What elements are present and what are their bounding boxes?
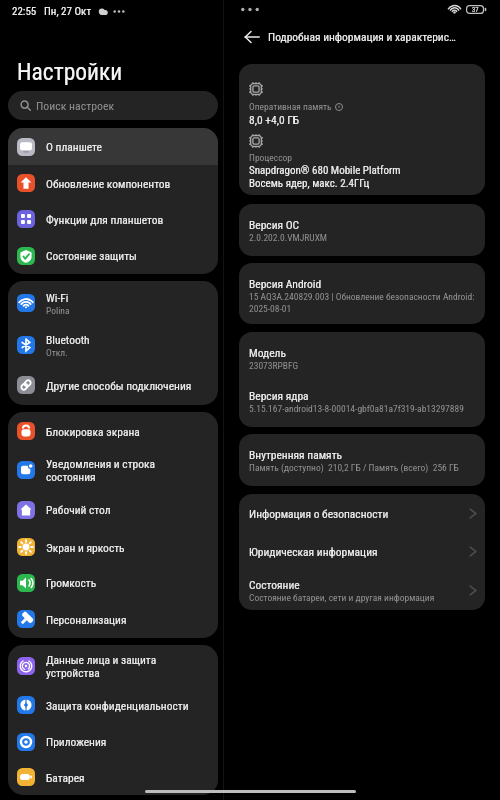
button[interactable]: Версия ядра	[239, 389, 485, 414]
staticText: Блокировка экрана	[46, 425, 140, 438]
button[interactable]: Юридическая информация	[239, 532, 485, 570]
button[interactable]: Состояние	[239, 570, 485, 610]
staticText: 15 AQ3A.240829.003 | Обновление безопасн…	[249, 291, 475, 314]
staticText: Восемь ядер, макс. 2.4ГГц	[249, 177, 370, 190]
button[interactable]: Персонализация	[8, 600, 218, 638]
staticText: Другие способы подключения	[46, 379, 192, 392]
staticText: Персонализация	[46, 613, 127, 626]
button[interactable]: Версия ОС	[239, 218, 485, 243]
button[interactable]: Поиск настроек	[8, 91, 218, 120]
staticText: 22:55	[12, 5, 37, 18]
button[interactable]: Назад	[238, 23, 266, 51]
staticText: 23073RPBFG	[249, 360, 299, 371]
button[interactable]: Другие способы подключения	[8, 365, 218, 405]
button[interactable]: Bluetooth	[8, 325, 218, 365]
staticText: Громкость	[46, 576, 97, 589]
staticText: Оперативная память	[249, 101, 332, 112]
staticText: Батарея	[46, 771, 85, 784]
button[interactable]: Функции для планшетов	[8, 201, 218, 237]
staticText: Состояние защиты	[46, 249, 137, 262]
staticText: Поиск настроек	[36, 99, 115, 113]
staticText: Настройки	[17, 58, 123, 86]
button[interactable]: Экран и яркость	[8, 529, 218, 565]
button[interactable]: Обновление компонентов	[8, 165, 218, 201]
staticText: Polina	[46, 305, 70, 316]
staticText: Экран и яркость	[46, 541, 125, 554]
staticText: Версия Android	[249, 277, 322, 290]
staticText: 5.15.167-android13-8-00014-gbf0a81a7f319…	[249, 403, 464, 414]
staticText: 2.0.202.0.VMJRUXM	[249, 232, 328, 243]
staticText: Защита конфиденциальности	[46, 699, 189, 712]
button[interactable]: Рабочий стол	[8, 490, 218, 529]
staticText: Память (доступно) 210,2 ГБ / Память (все…	[249, 462, 459, 473]
button[interactable]: Внутренняя память	[239, 448, 485, 473]
staticText: Bluetooth	[46, 333, 90, 346]
button[interactable]: О планшете	[8, 128, 218, 165]
staticText: Внутренняя память	[249, 448, 343, 461]
staticText: Юридическая информация	[249, 545, 378, 558]
button[interactable]: Приложения	[8, 724, 218, 759]
button[interactable]: Модель	[239, 346, 485, 371]
staticText: Обновление компонентов	[46, 177, 171, 190]
staticText: Информация о безопасности	[249, 507, 389, 520]
staticText: Рабочий стол	[46, 503, 111, 516]
staticText: О планшете	[46, 140, 102, 153]
staticText: Состояние	[249, 578, 300, 591]
staticText: Откл.	[46, 347, 68, 358]
staticText: Процессор	[249, 152, 293, 163]
button[interactable]: Батарея	[8, 759, 218, 795]
button[interactable]: Защита конфиденциальности	[8, 686, 218, 724]
staticText: Версия ядра	[249, 389, 309, 402]
staticText: Wi-Fi	[46, 291, 69, 304]
staticText: Уведомления и строка состояния	[46, 457, 155, 483]
button[interactable]: Уведомления и строка состояния	[8, 450, 218, 490]
staticText: Модель	[249, 346, 286, 359]
staticText: Версия ОС	[249, 218, 300, 231]
button[interactable]: Wi-Fi	[8, 281, 218, 325]
button[interactable]: Данные лица и защита устройства	[8, 645, 218, 686]
button[interactable]: Информация о безопасности	[239, 494, 485, 532]
staticText: 37	[472, 6, 479, 14]
button[interactable]: Версия Android	[239, 277, 485, 314]
staticText: 8,0 +4,0 ГБ	[249, 113, 300, 126]
staticText: Snapdragon® 680 Mobile Platform	[249, 164, 401, 177]
staticText: Состояние батареи, сети и другая информа…	[249, 592, 435, 603]
staticText: Пн, 27 Окт	[44, 5, 92, 18]
staticText: Подробная информация и характерис…	[268, 30, 456, 43]
button[interactable]: Состояние защиты	[8, 237, 218, 274]
button[interactable]: Блокировка экрана	[8, 412, 218, 450]
button[interactable]: Громкость	[8, 565, 218, 600]
staticText: Приложения	[46, 735, 107, 748]
staticText: Данные лица и защита устройства	[46, 653, 157, 679]
staticText: Функции для планшетов	[46, 213, 164, 226]
